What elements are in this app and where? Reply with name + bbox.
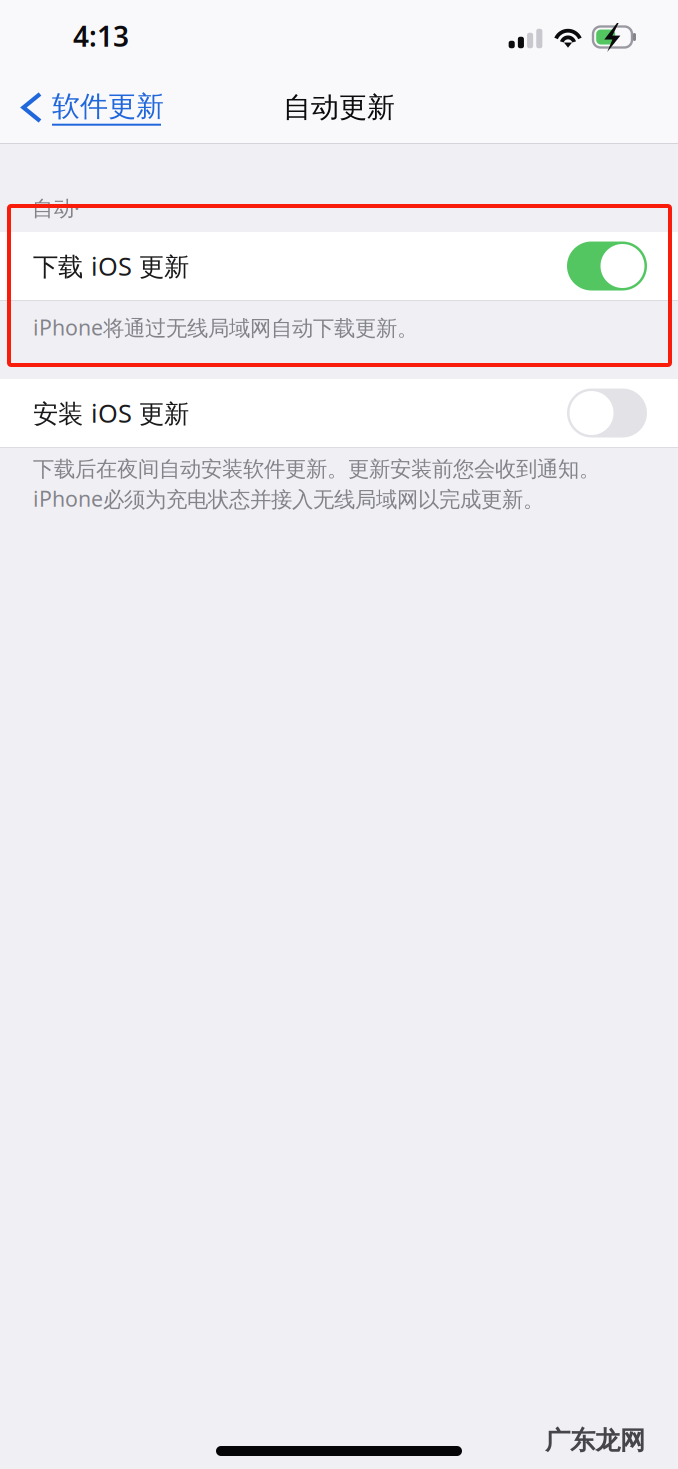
button[interactable]: 下载 iOS 更新 bbox=[0, 232, 678, 300]
staticText: 安装 iOS 更新 bbox=[33, 396, 189, 430]
staticText: 软件更新 bbox=[52, 89, 164, 124]
staticText: iPhone将通过无线局域网自动下载更新。 bbox=[33, 313, 418, 341]
button[interactable]: 软件更新 bbox=[0, 81, 164, 134]
button[interactable]: 安装 iOS 更新 bbox=[0, 379, 678, 447]
staticText: iPhone必须为充电状态并接入无线局域网以完成更新。 bbox=[33, 484, 544, 513]
staticText: 下载 iOS 更新 bbox=[33, 249, 189, 283]
staticText: 广东龙网 bbox=[545, 1425, 645, 1456]
staticText: 4:13 bbox=[73, 17, 129, 55]
staticText: 自动· bbox=[32, 194, 80, 222]
staticText: 自动更新 bbox=[283, 90, 395, 125]
staticText: 下载后在夜间自动安装软件更新。更新安装前您会收到通知。 bbox=[33, 456, 600, 482]
